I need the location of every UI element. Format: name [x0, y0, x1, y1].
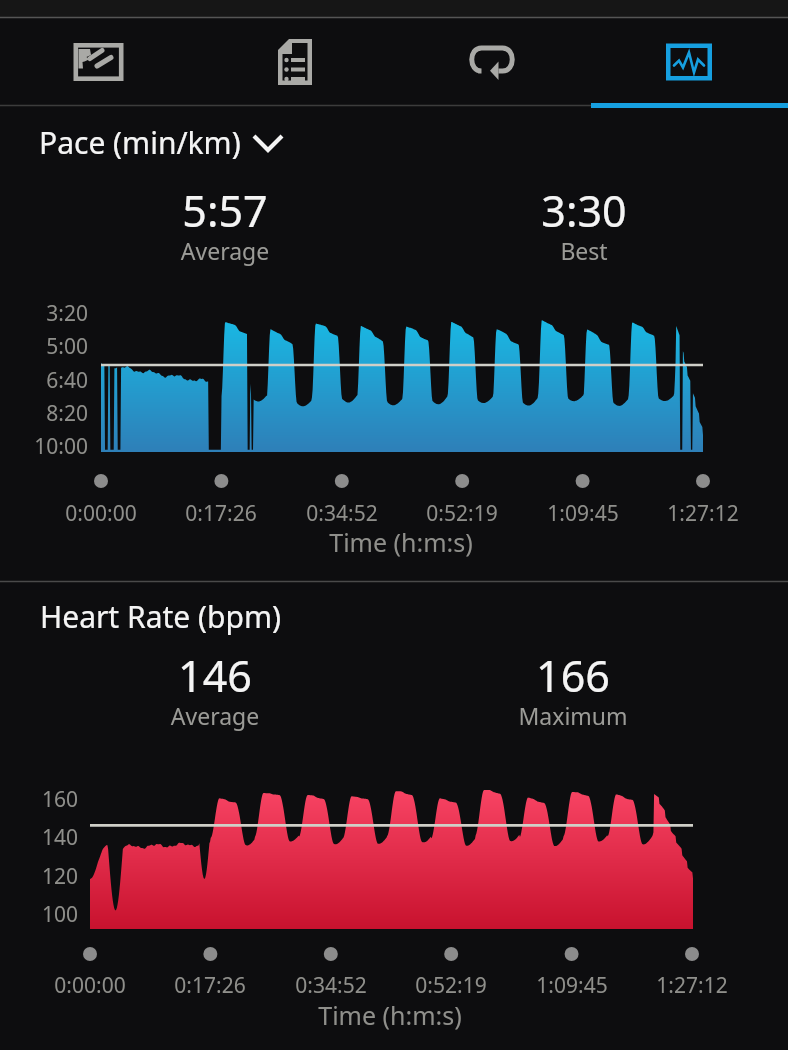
- staticText: Best: [434, 235, 734, 266]
- staticText: Heart Rate (bpm): [40, 596, 281, 637]
- button[interactable]: Charts: [591, 18, 788, 106]
- staticText: 0:17:26: [70, 971, 350, 1000]
- staticText: Time (h:m:s): [250, 998, 530, 1032]
- button[interactable]: Map: [0, 18, 197, 106]
- staticText: 0:52:19: [311, 971, 591, 1000]
- button[interactable]: Pace (min/km): [31, 119, 293, 165]
- staticText: 8:20: [0, 399, 88, 428]
- staticText: 10:00: [0, 432, 88, 461]
- staticText: Maximum: [423, 700, 723, 731]
- staticText: 5:00: [0, 332, 88, 361]
- staticText: 3:30: [434, 181, 734, 240]
- staticText: 3:20: [0, 299, 88, 328]
- staticText: 6:40: [0, 366, 88, 395]
- staticText: 0:17:26: [81, 499, 361, 528]
- staticText: 166: [423, 646, 723, 705]
- staticText: 140: [0, 823, 78, 852]
- staticText: 5:57: [75, 181, 375, 240]
- staticText: 120: [0, 862, 78, 891]
- staticText: 160: [0, 785, 78, 814]
- staticText: 1:27:12: [563, 499, 788, 528]
- staticText: 0:34:52: [191, 971, 471, 1000]
- staticText: 146: [65, 646, 365, 705]
- staticText: 0:34:52: [202, 499, 482, 528]
- button[interactable]: Summary: [197, 18, 394, 106]
- staticText: 1:09:45: [432, 971, 712, 1000]
- staticText: 1:27:12: [552, 971, 788, 1000]
- staticText: Average: [75, 235, 375, 266]
- staticText: Average: [65, 700, 365, 731]
- staticText: 100: [0, 900, 78, 929]
- staticText: Time (h:m:s): [261, 525, 541, 559]
- staticText: Pace (min/km): [39, 122, 241, 163]
- button[interactable]: Laps: [394, 18, 591, 106]
- staticText: 1:09:45: [443, 499, 723, 528]
- staticText: 0:00:00: [0, 499, 241, 528]
- staticText: 0:00:00: [0, 971, 230, 1000]
- staticText: 0:52:19: [322, 499, 602, 528]
